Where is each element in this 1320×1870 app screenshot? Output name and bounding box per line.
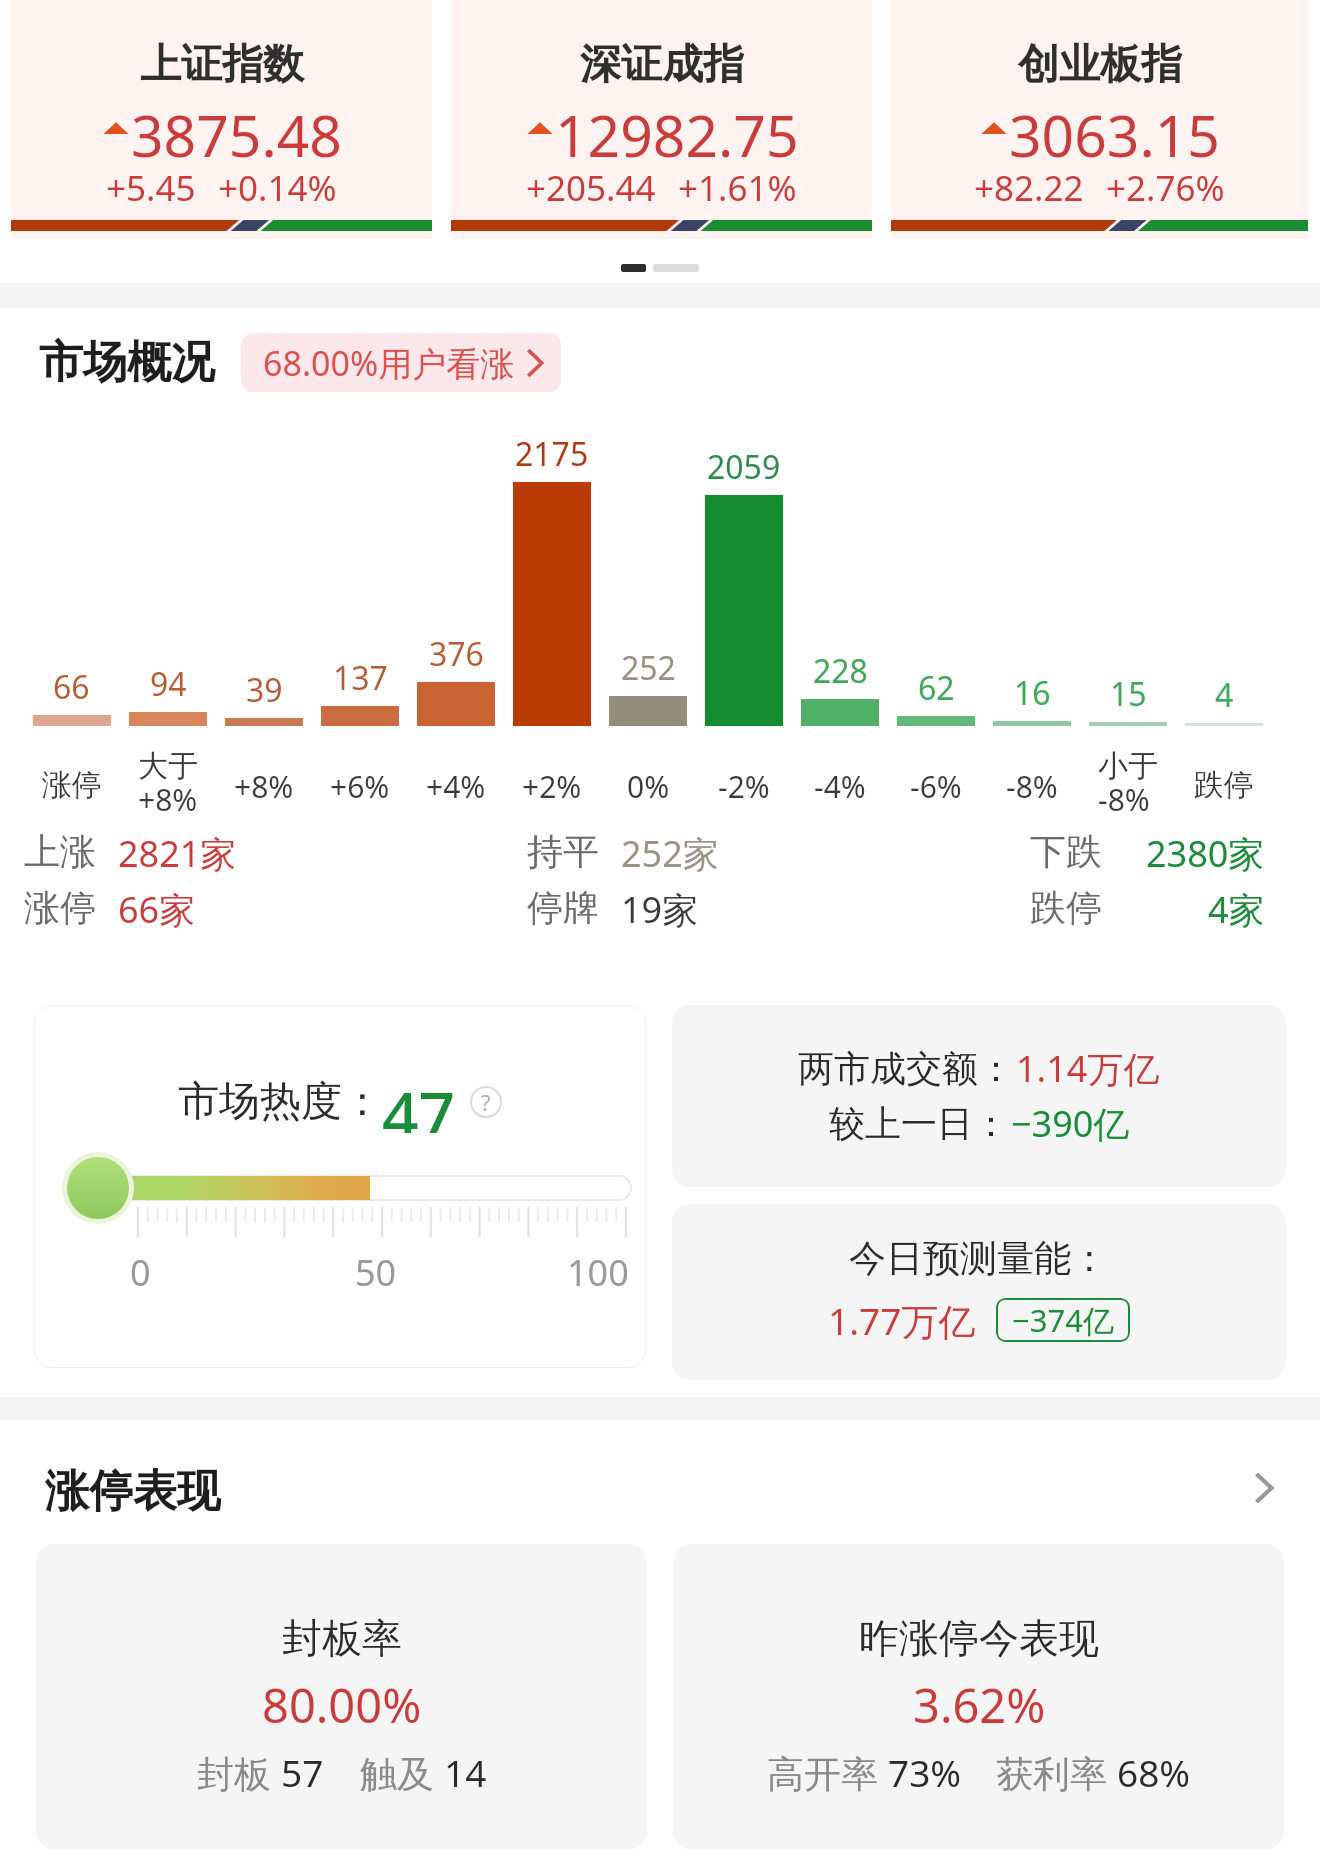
- staticText: 0: [130, 1248, 151, 1297]
- staticText: 停牌: [527, 885, 599, 930]
- staticText: 涨停: [24, 885, 96, 930]
- button[interactable]: 今日预测量能: [672, 1204, 1286, 1380]
- staticText: 3.62%: [913, 1673, 1046, 1737]
- staticText: 市场热度: [178, 1076, 342, 1128]
- staticText: 上涨: [24, 829, 96, 874]
- staticText: 跌停: [1194, 766, 1254, 804]
- button[interactable]: 上证指数: [11, 0, 432, 239]
- staticText: +8%: [234, 766, 294, 807]
- staticText: 2380家: [1146, 829, 1265, 878]
- staticText: 高开率: [767, 1747, 888, 1798]
- staticText: -8%: [1006, 766, 1058, 807]
- staticText: 137: [333, 656, 388, 700]
- staticText: 涨停: [42, 766, 102, 804]
- staticText: 封板率: [282, 1613, 402, 1663]
- staticText: 持平: [527, 829, 599, 874]
- staticText: 62: [918, 666, 955, 710]
- staticText: 0%: [627, 766, 670, 807]
- staticText: 1.14万亿: [1016, 1044, 1160, 1093]
- staticText: 创业板指: [1018, 39, 1182, 91]
- staticText: 大于 +8%: [138, 747, 198, 819]
- staticText: ：: [973, 1101, 1011, 1146]
- button[interactable]: 深证成指: [451, 0, 872, 239]
- staticText: 47: [382, 1071, 456, 1133]
- staticText: 小于 -8%: [1098, 747, 1158, 819]
- staticText: ：: [342, 1076, 382, 1128]
- staticText: +6%: [330, 766, 390, 807]
- staticText: −390亿: [1011, 1099, 1130, 1148]
- staticText: 昨涨停今表现: [859, 1613, 1099, 1663]
- button[interactable]: More limit-up performance: [1241, 1465, 1287, 1511]
- staticText: 16: [1014, 671, 1051, 715]
- staticText: 100: [567, 1248, 629, 1297]
- staticText: 涨停表现: [45, 1464, 221, 1512]
- staticText: 14: [444, 1747, 487, 1797]
- staticText: 50: [355, 1248, 397, 1297]
- staticText: 3875.48: [131, 96, 342, 160]
- staticText: 66家: [118, 885, 196, 934]
- staticText: 57: [281, 1747, 324, 1797]
- staticText: 封板: [197, 1747, 281, 1798]
- staticText: -6%: [910, 766, 962, 807]
- staticText: 228: [813, 649, 868, 693]
- staticText: 66: [53, 665, 90, 709]
- staticText: +2.76%: [1106, 164, 1225, 208]
- staticText: 3063.15: [1009, 96, 1220, 160]
- staticText: 今日预测量能: [849, 1235, 1071, 1282]
- staticText: 94: [150, 662, 187, 706]
- staticText: 68.00%用户看涨: [263, 340, 515, 386]
- button[interactable]: 封板率: [36, 1544, 647, 1849]
- staticText: 1.77万亿: [828, 1295, 976, 1346]
- staticText: ：: [978, 1046, 1016, 1091]
- button[interactable]: 昨涨停今表现: [673, 1544, 1284, 1849]
- staticText: +1.61%: [678, 164, 797, 208]
- staticText: 深证成指: [580, 39, 744, 91]
- staticText: 较上一日: [829, 1101, 973, 1146]
- button[interactable]: 两市成交额: [672, 1005, 1286, 1187]
- staticText: 上证指数: [140, 39, 304, 91]
- button[interactable]: 市场热度: [34, 1005, 646, 1368]
- staticText: 4: [1215, 673, 1234, 717]
- staticText: +4%: [426, 766, 486, 807]
- staticText: 15: [1110, 672, 1147, 716]
- staticText: 2175: [515, 432, 589, 476]
- staticText: +205.44: [526, 164, 656, 208]
- staticText: +0.14%: [218, 164, 337, 208]
- staticText: −374亿: [1012, 1299, 1114, 1341]
- staticText: ?: [481, 1087, 491, 1117]
- button[interactable]: 68.00%用户看涨: [241, 333, 561, 392]
- staticText: +82.22: [974, 164, 1084, 208]
- staticText: 19家: [621, 885, 699, 934]
- staticText: 39: [246, 668, 283, 712]
- staticText: 80.00%: [262, 1673, 422, 1737]
- staticText: 73%: [888, 1747, 962, 1797]
- staticText: +5.45: [106, 164, 196, 208]
- staticText: 4家: [1208, 885, 1265, 934]
- staticText: 下跌: [1030, 829, 1102, 874]
- button[interactable]: 创业板指: [891, 0, 1308, 239]
- staticText: 触及: [360, 1747, 444, 1798]
- staticText: 两市成交额: [798, 1046, 978, 1091]
- staticText: 2059: [707, 445, 781, 489]
- staticText: +2%: [522, 766, 582, 807]
- staticText: 获利率: [996, 1747, 1117, 1798]
- staticText: 252: [621, 646, 676, 690]
- staticText: 252家: [621, 829, 719, 878]
- staticText: 2821家: [118, 829, 237, 878]
- staticText: 跌停: [1030, 885, 1102, 930]
- staticText: 376: [429, 632, 484, 676]
- staticText: 68%: [1117, 1747, 1191, 1797]
- staticText: -2%: [718, 766, 770, 807]
- staticText: 市场概况: [39, 335, 215, 390]
- staticText: -4%: [814, 766, 866, 807]
- staticText: ：: [1071, 1235, 1109, 1282]
- staticText: 12982.75: [555, 96, 799, 160]
